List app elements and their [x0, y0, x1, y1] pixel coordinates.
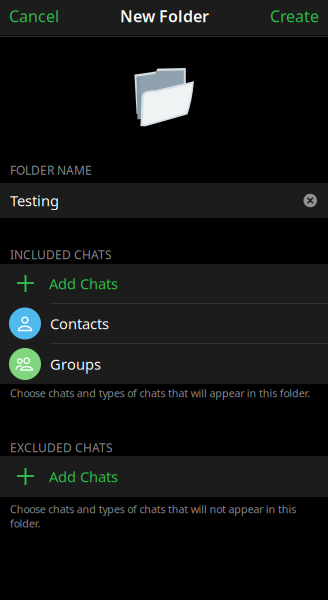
- staticText: Groups: [50, 354, 101, 374]
- button[interactable]: Contacts: [0, 304, 328, 343]
- staticText: Contacts: [50, 314, 109, 333]
- staticText: New Folder: [120, 5, 209, 27]
- staticText: EXCLUDED CHATS: [10, 439, 113, 455]
- button[interactable]: Groups: [0, 344, 328, 384]
- staticText: Create: [270, 5, 319, 27]
- staticText: Cancel: [9, 5, 59, 27]
- staticText: Choose chats and types of chats that wil…: [10, 386, 310, 400]
- staticText: Add Chats: [49, 274, 118, 293]
- button[interactable]: Add Chats: [0, 456, 328, 497]
- button[interactable]: Testing: [0, 183, 328, 218]
- staticText: FOLDER NAME: [10, 162, 92, 178]
- staticText: Testing: [10, 191, 59, 210]
- button[interactable]: Add Chats: [0, 264, 328, 303]
- staticText: INCLUDED CHATS: [10, 246, 112, 262]
- button[interactable]: Create: [265, 0, 324, 37]
- staticText: Choose chats and types of chats that wil…: [10, 502, 296, 530]
- button[interactable]: Cancel: [4, 0, 64, 37]
- staticText: Add Chats: [49, 467, 118, 486]
